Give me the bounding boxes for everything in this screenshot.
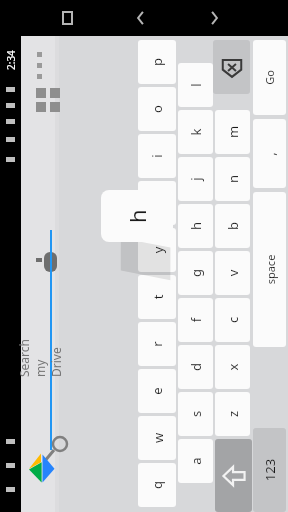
- staticText: e: [148, 387, 166, 395]
- staticText: Search my Drive: [16, 333, 64, 377]
- staticText: r: [148, 341, 166, 347]
- staticText: o: [148, 105, 166, 113]
- staticText: n: [223, 174, 241, 183]
- staticText: d: [187, 363, 205, 371]
- staticText: h: [122, 209, 152, 223]
- staticText: x: [223, 363, 241, 370]
- button[interactable]: f: [178, 298, 213, 342]
- button[interactable]: l: [178, 63, 213, 107]
- button[interactable]: d: [178, 345, 213, 389]
- staticText: q: [148, 481, 166, 489]
- button[interactable]: u: [138, 181, 176, 225]
- button[interactable]: m: [215, 110, 250, 154]
- staticText: t: [148, 294, 166, 299]
- button[interactable]: a: [178, 439, 213, 483]
- staticText: y: [148, 246, 166, 253]
- button[interactable]: h: [178, 204, 213, 248]
- staticText: w: [148, 432, 166, 443]
- staticText: k: [186, 128, 204, 135]
- button[interactable]: t: [138, 275, 176, 319]
- staticText: s: [186, 410, 204, 417]
- staticText: space: [262, 254, 277, 284]
- staticText: l: [187, 83, 205, 87]
- button[interactable]: p: [138, 40, 176, 84]
- staticText: z: [223, 410, 241, 417]
- staticText: p: [148, 58, 166, 66]
- button[interactable]: x: [215, 345, 250, 389]
- button[interactable]: i: [138, 134, 176, 178]
- button[interactable]: j: [178, 157, 213, 201]
- staticText: b: [224, 222, 242, 230]
- button[interactable]: Shift: [215, 439, 252, 512]
- staticText: Go: [262, 70, 277, 85]
- button[interactable]: Google Drive: [26, 452, 56, 484]
- button[interactable]: 123: [253, 428, 286, 512]
- button[interactable]: Go: [253, 40, 286, 115]
- staticText: m: [223, 125, 241, 138]
- button[interactable]: o: [138, 87, 176, 131]
- staticText: a: [187, 457, 205, 465]
- button[interactable]: Backspace: [213, 40, 250, 94]
- button[interactable]: r: [138, 322, 176, 366]
- button[interactable]: Recents: [54, 4, 82, 32]
- staticText: ,: [261, 152, 279, 156]
- button[interactable]: y: [138, 228, 176, 272]
- button[interactable]: v: [215, 251, 250, 295]
- staticText: i: [148, 154, 166, 158]
- staticText: g: [187, 269, 205, 277]
- button[interactable]: w: [138, 416, 176, 460]
- button[interactable]: Switch view: [30, 82, 52, 104]
- button[interactable]: Comma: [253, 119, 286, 188]
- button[interactable]: n: [215, 157, 250, 201]
- button[interactable]: More options: [30, 46, 52, 70]
- button[interactable]: Voice search: [28, 232, 52, 258]
- staticText: j: [187, 177, 205, 181]
- button[interactable]: b: [215, 204, 250, 248]
- button[interactable]: q: [138, 463, 176, 507]
- button[interactable]: e: [138, 369, 176, 413]
- button[interactable]: Back: [127, 4, 155, 32]
- button[interactable]: s: [178, 392, 213, 436]
- button[interactable]: k: [178, 110, 213, 154]
- staticText: c: [223, 316, 241, 323]
- button[interactable]: z: [215, 392, 250, 436]
- staticText: f: [186, 317, 204, 322]
- button[interactable]: g: [178, 251, 213, 295]
- staticText: v: [223, 269, 241, 276]
- button[interactable]: Search: [28, 418, 52, 442]
- staticText: 123: [260, 458, 278, 481]
- button[interactable]: space: [253, 192, 286, 347]
- staticText: h: [186, 221, 204, 230]
- staticText: 2:34: [4, 50, 18, 70]
- button[interactable]: Home: [200, 4, 228, 32]
- button[interactable]: c: [215, 298, 250, 342]
